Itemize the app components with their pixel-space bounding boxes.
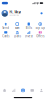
staticText: Invest (25, 34, 33, 38)
staticText: Good morning (9, 14, 19, 16)
button[interactable]: Send (0, 23, 11, 30)
button[interactable]: Profile (37, 87, 46, 94)
staticText: Cards (2, 34, 9, 38)
button[interactable]: Wallet (28, 87, 37, 94)
staticText: Offers (36, 34, 44, 38)
button[interactable]: Scan (11, 23, 23, 30)
button[interactable]: Pay (18, 87, 28, 94)
staticText: Top up (35, 26, 45, 30)
button[interactable]: Top up (34, 23, 46, 30)
button[interactable]: Notifications (40, 12, 43, 14)
button[interactable]: Bills (23, 23, 34, 30)
button[interactable]: Cards (0, 31, 11, 38)
staticText: Send (2, 26, 9, 30)
staticText: Hi, Maya (9, 10, 21, 14)
button[interactable]: Loans (11, 31, 23, 38)
staticText: Scan (15, 26, 20, 30)
button[interactable]: Activity (9, 87, 18, 94)
staticText: Loans (14, 34, 21, 38)
button[interactable]: Home (0, 87, 9, 94)
button[interactable]: Offers (34, 31, 46, 38)
button[interactable]: Invest (23, 31, 34, 38)
staticText: Bills (26, 26, 32, 30)
